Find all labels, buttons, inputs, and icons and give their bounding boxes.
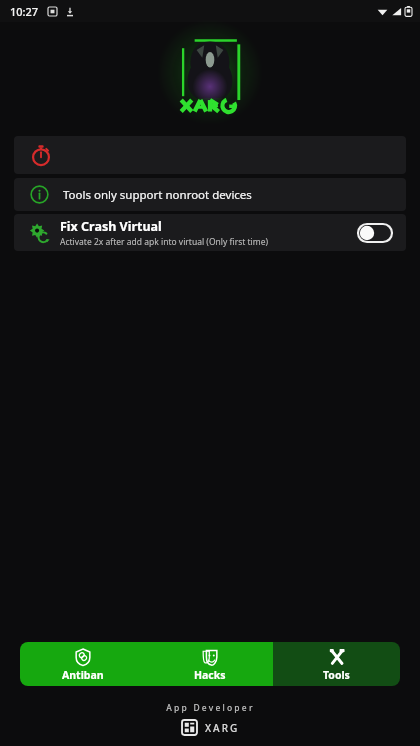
button[interactable]: Timer (14, 136, 406, 174)
staticText: Antiban (62, 668, 104, 682)
button[interactable]: Tools only support nonroot devices (14, 178, 406, 211)
button[interactable]: Developer logo (181, 719, 240, 736)
staticText: XARG (205, 721, 240, 735)
staticText: 10:27 (10, 4, 39, 19)
button[interactable]: Fix Crash Virtual toggle (358, 224, 392, 242)
staticText: Tools (323, 668, 350, 682)
staticText: Hacks (194, 668, 226, 682)
staticText: Tools only support nonroot devices (63, 187, 252, 203)
staticText: Fix Crash Virtual (60, 218, 162, 235)
button[interactable]: Tools (273, 642, 400, 686)
staticText: Activate 2x after add apk into virtual (… (60, 236, 269, 248)
button[interactable]: Hacks (146, 642, 273, 686)
button[interactable]: Antiban (20, 642, 146, 686)
staticText: App Developer (166, 702, 255, 714)
other: Developer logo (181, 719, 198, 736)
other: Timer (30, 144, 52, 166)
button[interactable]: Fix Crash Virtual (14, 214, 406, 251)
